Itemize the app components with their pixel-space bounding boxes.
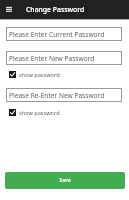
staticText: Please Re-Enter New Password [9,91,105,100]
button[interactable]: show password [9,109,60,116]
button[interactable]: Please Re-Enter New Password [6,88,122,102]
staticText: Please Enter Current Password [9,30,105,39]
button[interactable]: Please Enter Current Password [6,27,122,41]
button[interactable]: Save [5,172,125,189]
button[interactable]: Please Enter New Password [6,51,122,65]
staticText: Please Enter New Password [9,54,95,63]
staticText: Change Password [26,5,85,14]
staticText: show password [19,109,60,116]
button[interactable]: Open navigation menu [0,1,18,19]
staticText: show password [19,71,60,78]
staticText: Save [59,177,71,184]
button[interactable]: show password [9,71,60,78]
